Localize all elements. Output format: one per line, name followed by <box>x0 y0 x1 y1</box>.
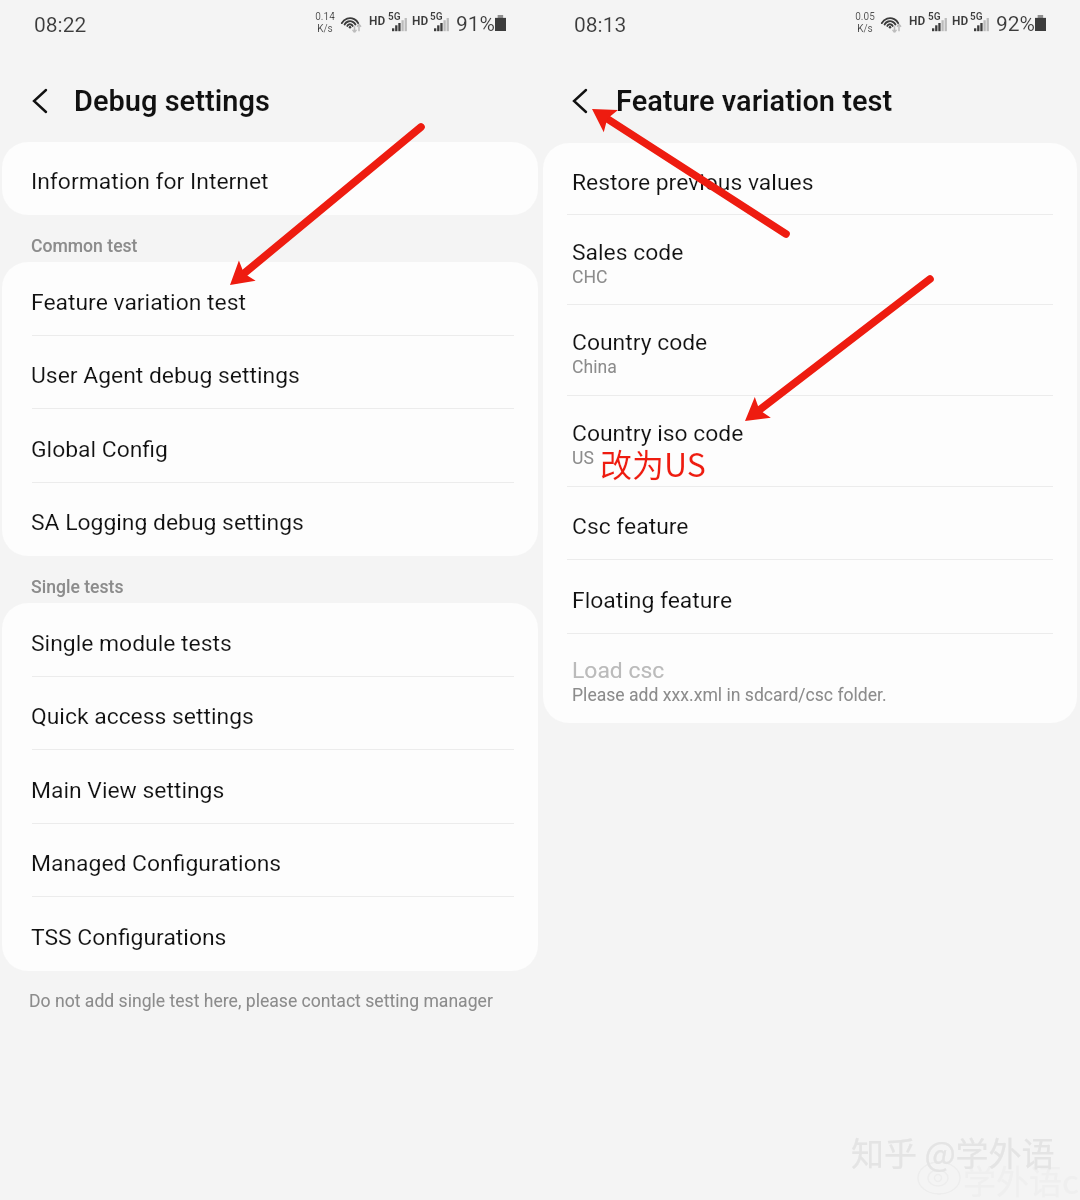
staticText: Do not add single test here, please cont… <box>29 991 493 1012</box>
staticText: 0.05 <box>855 11 875 23</box>
button[interactable]: Csc feature <box>543 487 1077 560</box>
button[interactable]: Country code <box>543 305 1077 396</box>
staticText: HD <box>369 14 386 28</box>
staticText: Single tests <box>31 577 124 598</box>
staticText: 0.14 <box>315 11 335 23</box>
staticText: 08:22 <box>34 13 87 38</box>
staticText: Csc feature <box>572 513 689 540</box>
staticText: 知乎 @学外语 <box>851 1128 1055 1176</box>
staticText: SA Logging debug settings <box>31 509 304 536</box>
staticText: Please add xxx.xml in sdcard/csc folder. <box>572 685 887 706</box>
staticText: K/s <box>857 23 873 35</box>
staticText: 5G <box>388 11 401 23</box>
staticText: 学外语c <box>963 1156 1079 1200</box>
button[interactable]: Global Config <box>2 409 538 483</box>
staticText: Single module tests <box>31 630 232 657</box>
staticText: US <box>572 448 594 469</box>
staticText: HD <box>412 14 429 28</box>
staticText: Country iso code <box>572 420 744 447</box>
staticText: Quick access settings <box>31 703 254 730</box>
staticText: K/s <box>317 23 333 35</box>
staticText: 08:13 <box>574 13 627 38</box>
staticText: HD <box>952 14 969 28</box>
staticText: China <box>572 357 617 378</box>
staticText: Main View settings <box>31 777 225 804</box>
staticText: Feature variation test <box>616 84 893 118</box>
staticText: Debug settings <box>74 84 270 118</box>
staticText: Information for Internet <box>31 168 269 195</box>
button[interactable]: Restore previous values <box>543 143 1077 215</box>
staticText: Load csc <box>572 657 665 684</box>
staticText: 91% <box>456 12 495 37</box>
staticText: Sales code <box>572 239 684 266</box>
button[interactable]: TSS Configurations <box>2 897 538 971</box>
button[interactable]: Sales code <box>543 215 1077 305</box>
button[interactable]: Back <box>556 77 604 125</box>
staticText: Common test <box>31 236 138 257</box>
staticText: 5G <box>970 11 983 23</box>
staticText: 92% <box>996 12 1035 37</box>
staticText: 5G <box>430 11 443 23</box>
button[interactable]: Country iso code <box>543 396 1077 487</box>
staticText: Floating feature <box>572 587 733 614</box>
button[interactable]: Feature variation test <box>2 262 538 336</box>
staticText: CHC <box>572 267 608 288</box>
staticText: HD <box>909 14 926 28</box>
button[interactable]: Managed Configurations <box>2 824 538 897</box>
staticText: TSS Configurations <box>31 924 227 951</box>
staticText: 5G <box>928 11 941 23</box>
staticText: User Agent debug settings <box>31 362 300 389</box>
button[interactable]: Floating feature <box>543 560 1077 634</box>
staticText: Restore previous values <box>572 169 814 196</box>
button[interactable]: Information for Internet <box>2 142 538 215</box>
button[interactable]: Back <box>16 77 64 125</box>
staticText: Managed Configurations <box>31 850 282 877</box>
button[interactable]: Main View settings <box>2 750 538 824</box>
button[interactable]: Quick access settings <box>2 677 538 750</box>
button[interactable]: User Agent debug settings <box>2 336 538 409</box>
staticText: Global Config <box>31 436 168 463</box>
staticText: 改为US <box>600 440 706 486</box>
button[interactable]: Single module tests <box>2 603 538 677</box>
staticText: Country code <box>572 329 708 356</box>
staticText: Feature variation test <box>31 289 246 316</box>
button[interactable]: Load csc <box>543 634 1077 723</box>
button[interactable]: SA Logging debug settings <box>2 483 538 556</box>
